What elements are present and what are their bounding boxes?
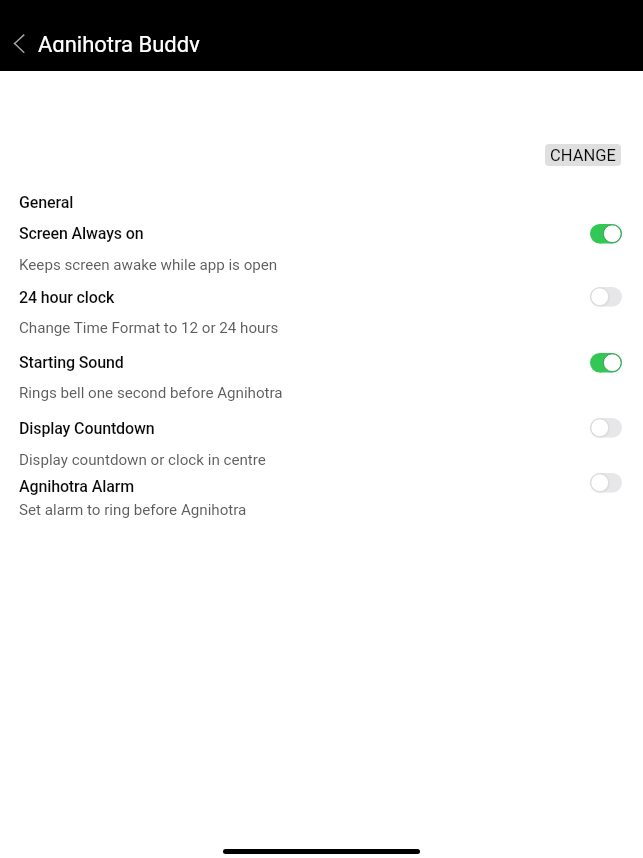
- staticText: Set alarm to ring before Agnihotra: [19, 501, 247, 519]
- staticText: 24 hour clock: [19, 288, 115, 307]
- staticText: Display Countdown: [19, 419, 155, 438]
- staticText: Change Time Format to 12 or 24 hours: [19, 319, 279, 337]
- staticText: Display countdown or clock in centre: [19, 451, 266, 469]
- staticText: General: [19, 193, 74, 212]
- staticText: Agnihotra Alarm: [19, 477, 134, 496]
- button[interactable]: CHANGE: [545, 144, 621, 166]
- button[interactable]: Screen Always on, on: [588, 222, 624, 246]
- button[interactable]: Back: [3, 27, 35, 59]
- staticText: Agnihotra Buddy: [38, 32, 200, 52]
- button[interactable]: Starting Sound, on: [588, 351, 624, 375]
- staticText: CHANGE: [550, 146, 616, 165]
- button[interactable]: [0, 345, 643, 410]
- staticText: Keeps screen awake while app is open: [19, 256, 278, 274]
- button[interactable]: 24 hour clock, off: [588, 285, 624, 309]
- staticText: Rings bell one second before Agnihotra: [19, 384, 283, 402]
- button[interactable]: [0, 470, 643, 522]
- button[interactable]: [0, 410, 643, 470]
- button[interactable]: Display Countdown, off: [588, 416, 624, 440]
- button[interactable]: [0, 216, 643, 280]
- staticText: Screen Always on: [19, 224, 144, 243]
- button[interactable]: Agnihotra Alarm, off: [588, 471, 624, 495]
- staticText: Starting Sound: [19, 353, 124, 372]
- button[interactable]: [0, 280, 643, 345]
